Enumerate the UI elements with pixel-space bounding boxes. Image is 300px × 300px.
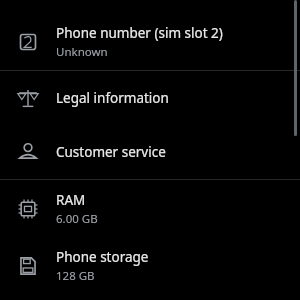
staticText: 6.00 GB bbox=[56, 211, 98, 227]
button[interactable]: SIM slot 2 bbox=[0, 13, 300, 70]
other: RAM bbox=[17, 198, 39, 220]
button[interactable]: Legal information bbox=[0, 71, 300, 125]
other: Legal information bbox=[17, 87, 39, 109]
staticText: Phone number (sim slot 2) bbox=[56, 24, 223, 42]
staticText: Phone storage bbox=[56, 248, 149, 266]
staticText: RAM bbox=[56, 191, 86, 209]
other: Customer service bbox=[17, 141, 39, 163]
other: SIM slot 2 bbox=[17, 31, 39, 53]
staticText: 128 GB bbox=[56, 268, 95, 284]
button[interactable]: Customer service bbox=[0, 125, 300, 179]
button[interactable]: Phone storage bbox=[0, 237, 300, 294]
staticText: Customer service bbox=[56, 143, 166, 161]
button[interactable]: RAM bbox=[0, 180, 300, 237]
staticText: Legal information bbox=[56, 89, 169, 107]
staticText: Unknown bbox=[56, 44, 108, 60]
other: Phone storage bbox=[17, 255, 39, 277]
